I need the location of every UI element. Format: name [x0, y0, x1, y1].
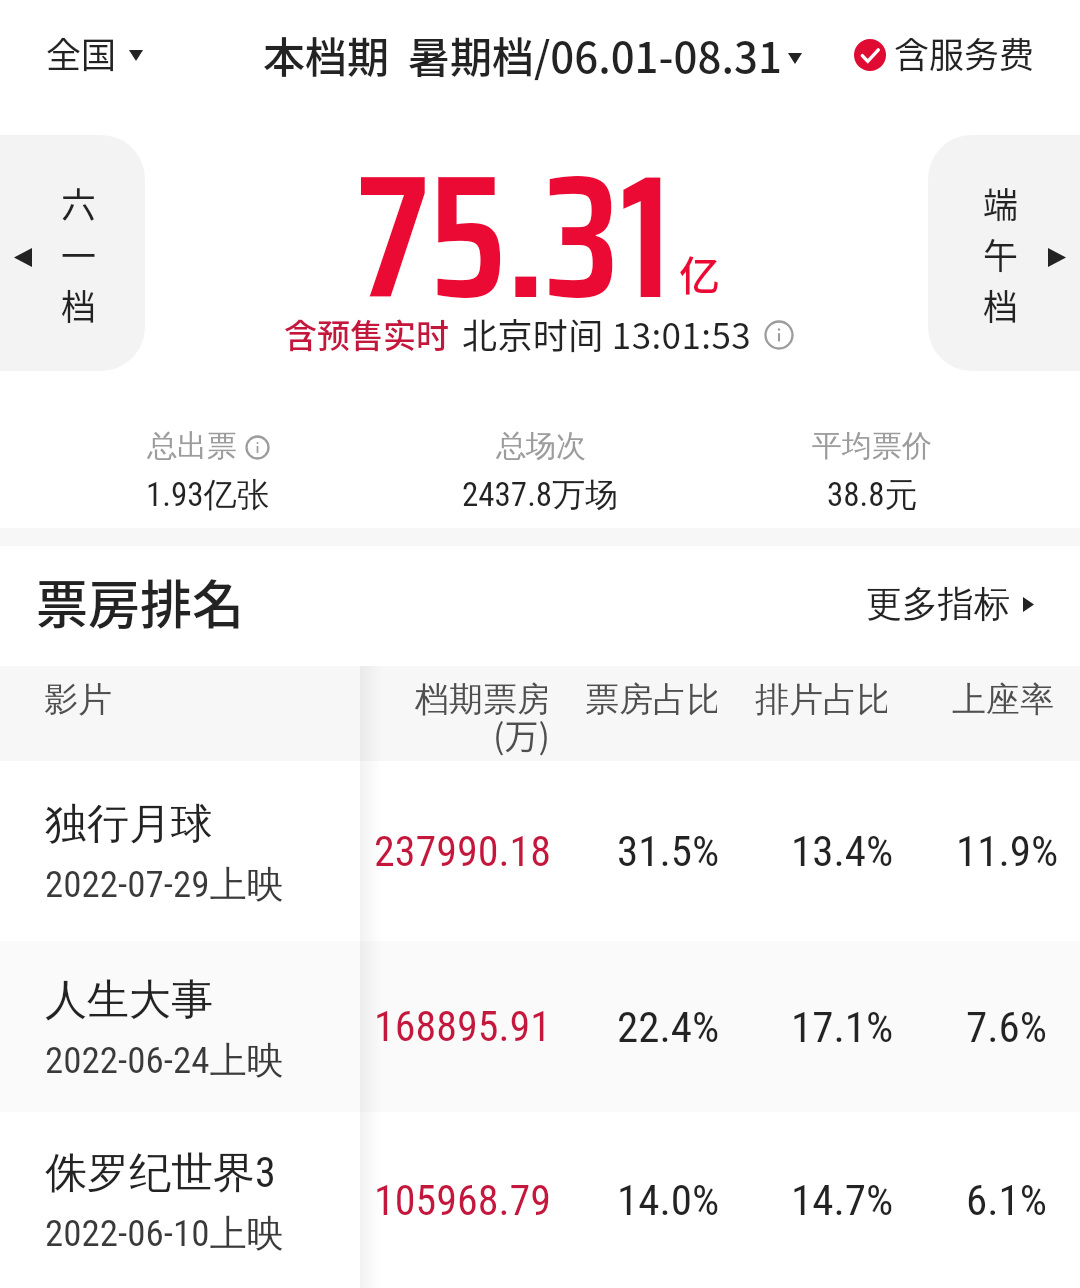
button[interactable]: 平均票价 — [706, 392, 1038, 528]
staticText: 档期票房 — [415, 678, 547, 721]
staticText: 13.4% — [791, 826, 894, 876]
staticText: 22.4% — [617, 1002, 720, 1052]
staticText: 亿 — [679, 243, 720, 302]
button[interactable]: 六 — [0, 135, 145, 371]
staticText: 午 — [983, 228, 1019, 279]
staticText: 本档期 暑期档/06.01-08.31 — [263, 24, 782, 85]
staticText: 2022-06-24上映 — [45, 1037, 284, 1084]
staticText: 105968.79 — [374, 1176, 551, 1225]
staticText: 14.0% — [617, 1175, 720, 1225]
staticText: 6.1% — [966, 1175, 1048, 1225]
staticText: 2022-07-29上映 — [45, 861, 284, 908]
button[interactable]: 全国 — [46, 27, 143, 78]
staticText: 档 — [61, 279, 97, 330]
button[interactable]: 独行月球 — [0, 761, 1080, 941]
staticText: 11.9% — [956, 826, 1059, 876]
staticText: 含预售实时 — [284, 310, 449, 358]
button[interactable]: 含服务费 — [854, 27, 1035, 78]
button[interactable]: 更多指标 — [866, 581, 1034, 626]
staticText: 含服务费 — [894, 27, 1035, 78]
staticText: 全国 — [46, 27, 117, 78]
staticText: 168895.91 — [374, 1002, 551, 1051]
button[interactable]: 端 — [928, 135, 1080, 371]
button[interactable]: 人生大事 — [0, 941, 1080, 1112]
staticText: 17.1% — [791, 1002, 894, 1052]
staticText: 14.7% — [791, 1175, 894, 1225]
button[interactable]: 本档期 暑期档/06.01-08.31 — [263, 24, 802, 85]
staticText: 237990.18 — [374, 827, 551, 876]
staticText: 端 — [983, 177, 1019, 228]
staticText: 38.8元 — [827, 474, 918, 516]
button[interactable]: 总场次 — [374, 392, 706, 528]
staticText: 六 — [61, 177, 97, 228]
staticText: 7.6% — [966, 1002, 1048, 1052]
staticText: 上座率 — [952, 678, 1054, 721]
staticText: (万) — [493, 710, 550, 759]
staticText: 侏罗纪世界3 — [45, 1147, 276, 1200]
staticText: 档 — [983, 279, 1019, 330]
staticText: 31.5% — [617, 826, 720, 876]
button[interactable]: 侏罗纪世界3 — [0, 1112, 1080, 1288]
staticText: 影片 — [44, 678, 112, 721]
staticText: 票房占比 — [585, 678, 717, 721]
staticText: 75.31 — [357, 101, 672, 373]
staticText: 一 — [61, 228, 97, 279]
staticText: 2022-06-10上映 — [45, 1210, 284, 1257]
button[interactable]: 下一档期 — [1048, 248, 1066, 267]
staticText: 人生大事 — [45, 974, 213, 1027]
staticText: 北京时间 13:01:53 — [462, 308, 752, 359]
staticText: 2437.8万场 — [462, 474, 619, 516]
staticText: 平均票价 — [812, 427, 932, 465]
staticText: 票房排名 — [36, 564, 245, 639]
staticText: 1.93亿张 — [146, 474, 270, 516]
staticText: 排片占比 — [755, 678, 887, 721]
staticText: 总场次 — [496, 427, 586, 465]
button[interactable]: 总出票 — [42, 392, 374, 528]
staticText: 独行月球 — [45, 798, 213, 851]
staticText: 总出票 — [147, 427, 237, 465]
staticText: 更多指标 — [866, 581, 1010, 626]
other: 含服务费 — [854, 39, 886, 71]
button[interactable]: 上一档期 — [14, 248, 32, 267]
